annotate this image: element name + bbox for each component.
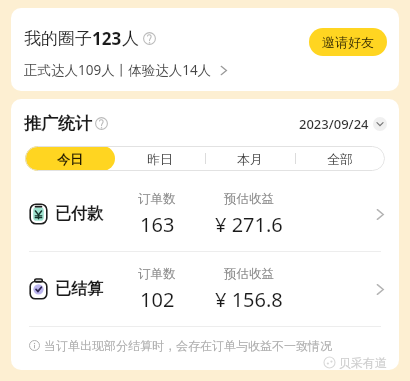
button[interactable]: 全部 bbox=[295, 146, 385, 171]
staticText: ¥ 156.8 bbox=[215, 286, 283, 313]
staticText: ¥ 271.6 bbox=[215, 211, 283, 238]
button[interactable]: 昨日 bbox=[115, 146, 205, 171]
button[interactable]: 已结算 bbox=[11, 252, 399, 326]
staticText: 已结算 bbox=[55, 279, 103, 299]
staticText: 102 bbox=[140, 286, 175, 313]
staticText: 昨日 bbox=[147, 151, 173, 167]
staticText: 2023/09/24 bbox=[299, 115, 369, 133]
button[interactable]: 邀请好友 bbox=[309, 28, 387, 56]
staticText: 邀请好友 bbox=[322, 34, 374, 50]
button[interactable]: 已付款 bbox=[11, 177, 399, 251]
staticText: 人 bbox=[122, 28, 139, 49]
staticText: 163 bbox=[140, 211, 175, 238]
staticText: 当订单出现部分结算时，会存在订单与收益不一致情况 bbox=[44, 338, 332, 353]
staticText: 全部 bbox=[327, 151, 353, 167]
button[interactable]: 2023/09/24 bbox=[299, 115, 387, 133]
staticText: 我的圈子 bbox=[24, 28, 92, 49]
staticText: 预估收益 bbox=[224, 266, 274, 282]
staticText: 订单数 bbox=[138, 266, 176, 282]
staticText: 预估收益 bbox=[224, 191, 274, 207]
button[interactable]: 本月 bbox=[205, 146, 295, 171]
button[interactable]: 帮助 bbox=[143, 32, 156, 45]
staticText: 正式达人109人丨体验达人14人 bbox=[24, 61, 212, 79]
staticText: 123 bbox=[92, 27, 122, 50]
staticText: 本月 bbox=[237, 151, 263, 167]
staticText: 已付款 bbox=[55, 204, 103, 224]
button[interactable]: 帮助 bbox=[95, 117, 108, 130]
staticText: 贝采有道 bbox=[339, 355, 387, 370]
staticText: 今日 bbox=[57, 151, 83, 167]
button[interactable]: 正式达人109人丨体验达人14人 bbox=[11, 61, 228, 79]
staticText: 推广统计 bbox=[24, 113, 92, 134]
staticText: 订单数 bbox=[138, 191, 176, 207]
button[interactable]: 今日 bbox=[25, 146, 115, 171]
